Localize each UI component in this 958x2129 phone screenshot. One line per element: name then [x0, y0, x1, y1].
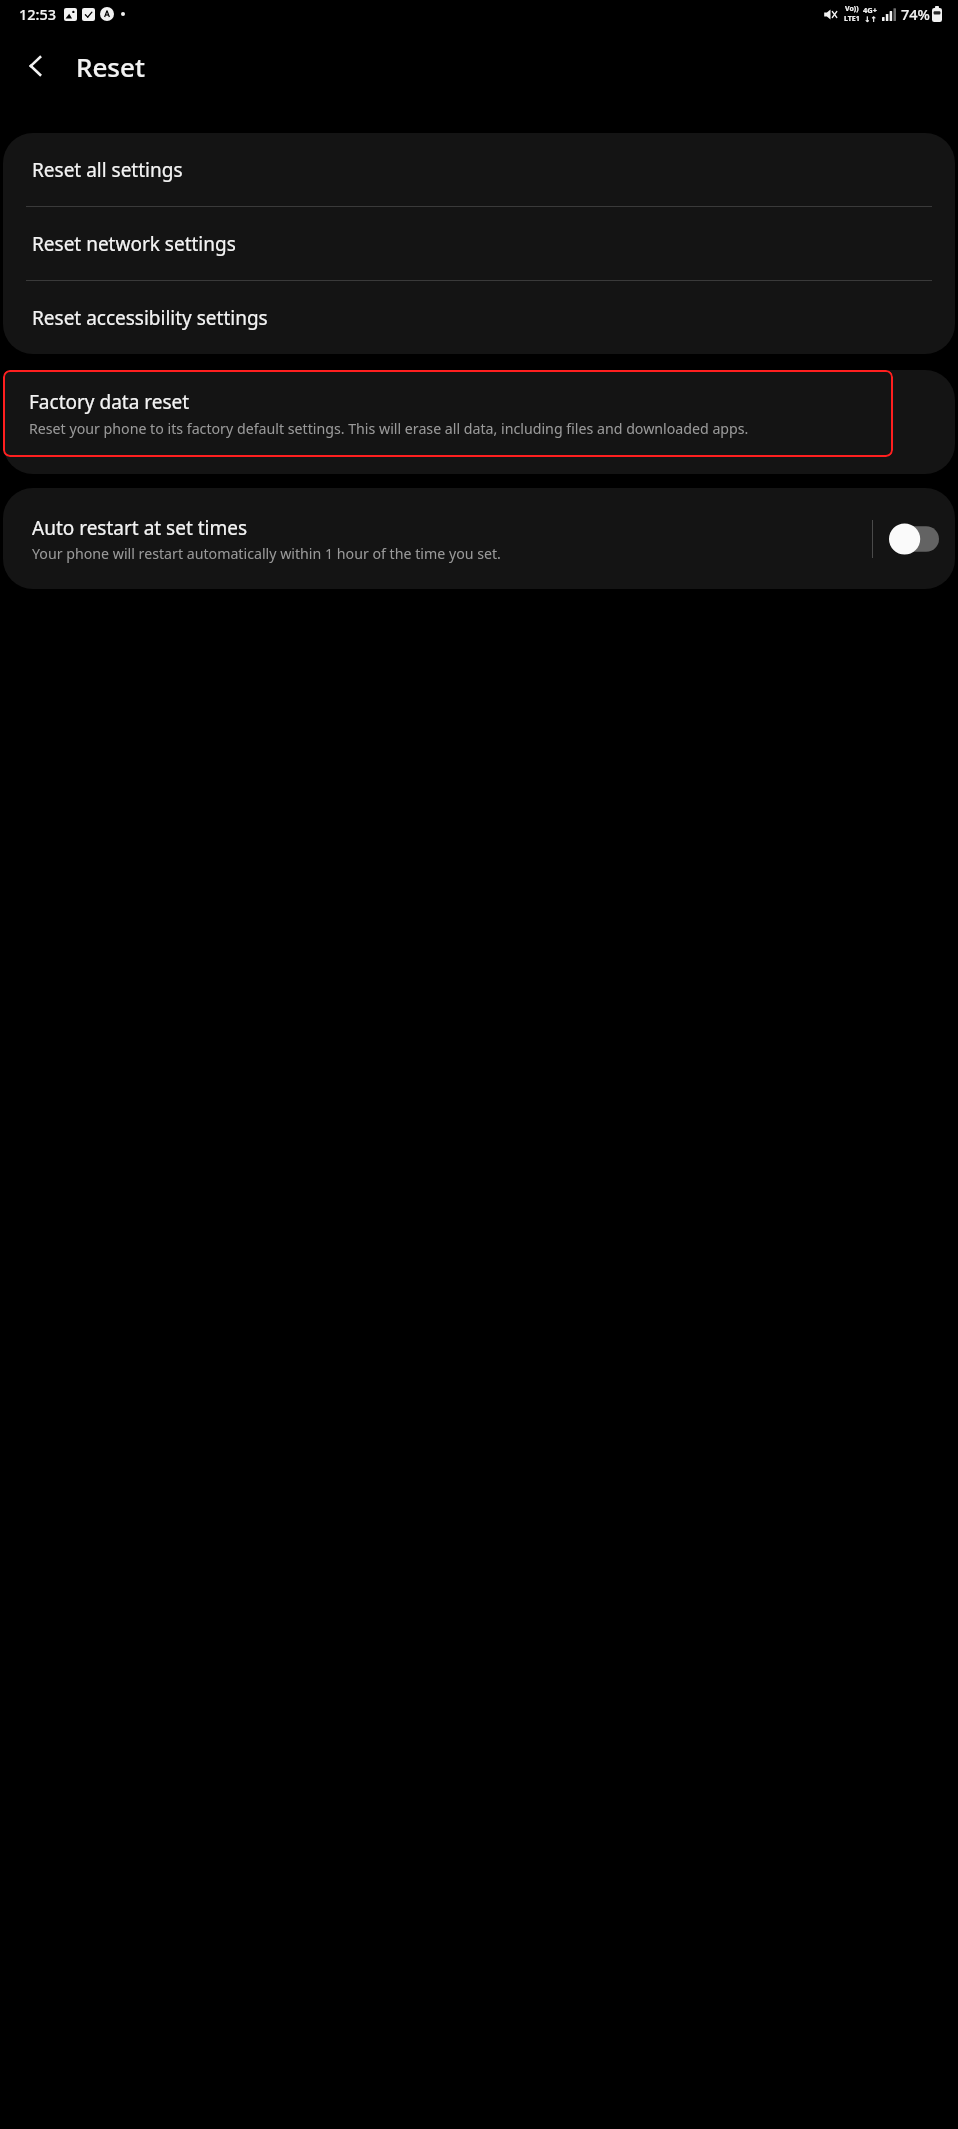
staticText: Factory data reset [29, 389, 190, 415]
staticText: Reset your phone to its factory default … [29, 419, 749, 438]
button[interactable]: Auto restart at set times [3, 515, 872, 563]
staticText: 74% [901, 4, 930, 24]
button[interactable]: Reset network settings [3, 207, 955, 280]
button[interactable]: Reset accessibility settings [3, 281, 955, 354]
staticText: ↓↑ [864, 15, 877, 24]
button[interactable]: Auto restart at set times toggle [873, 507, 955, 571]
staticText: Your phone will restart automatically wi… [32, 544, 501, 563]
staticText: LTE1 [844, 14, 860, 24]
staticText: 12:53 [19, 4, 57, 24]
staticText: 4G+ [863, 5, 878, 15]
button[interactable]: Factory data reset [3, 370, 893, 457]
staticText: Auto restart at set times [32, 515, 248, 541]
staticText: Reset [76, 49, 145, 84]
staticText: Vo)) [845, 4, 859, 14]
staticText: Reset network settings [32, 231, 236, 257]
staticText: Reset accessibility settings [32, 305, 268, 331]
button[interactable]: Back [12, 42, 60, 90]
button[interactable]: Reset all settings [3, 133, 955, 206]
staticText: Reset all settings [32, 157, 183, 183]
